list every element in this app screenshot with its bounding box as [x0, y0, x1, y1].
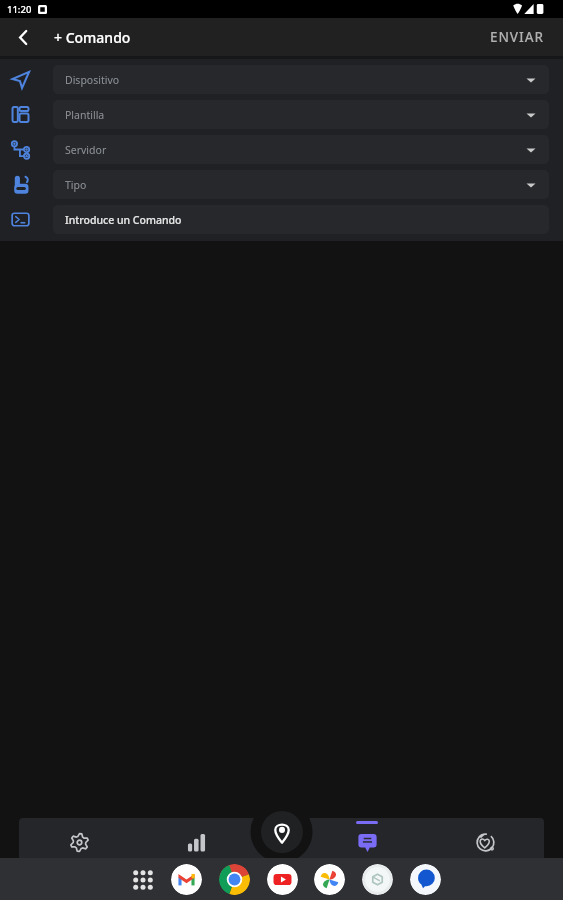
button[interactable]: Google Photos: [314, 864, 345, 895]
button[interactable]: Tipo: [0, 167, 563, 202]
button[interactable]: Servidor: [0, 132, 563, 167]
staticText: 11:20: [7, 3, 32, 16]
staticText: Plantilla: [65, 108, 105, 122]
button[interactable]: Messages: [334, 818, 400, 858]
button[interactable]: ENVIAR: [476, 20, 563, 54]
staticText: Introduce un Comando: [65, 213, 182, 227]
button[interactable]: Monitor: [452, 818, 518, 858]
staticText: Tipo: [65, 178, 87, 192]
staticText: + Comando: [54, 28, 131, 47]
button[interactable]: All apps: [127, 864, 158, 895]
button[interactable]: Location: [261, 811, 303, 853]
button[interactable]: Gmail: [171, 864, 202, 895]
button[interactable]: Settings: [362, 864, 393, 895]
staticText: Servidor: [65, 143, 107, 157]
button[interactable]: Back: [4, 18, 42, 56]
button[interactable]: Introduce un Comando: [0, 202, 563, 237]
button[interactable]: YouTube: [267, 864, 298, 895]
button[interactable]: Plantilla: [0, 97, 563, 132]
button[interactable]: Messages: [410, 864, 441, 895]
staticText: Dispositivo: [65, 73, 120, 87]
staticText: ENVIAR: [490, 28, 544, 46]
button[interactable]: Statistics: [163, 818, 229, 858]
button[interactable]: Settings: [46, 818, 112, 858]
button[interactable]: Dispositivo: [0, 62, 563, 97]
button[interactable]: Chrome: [219, 864, 250, 895]
